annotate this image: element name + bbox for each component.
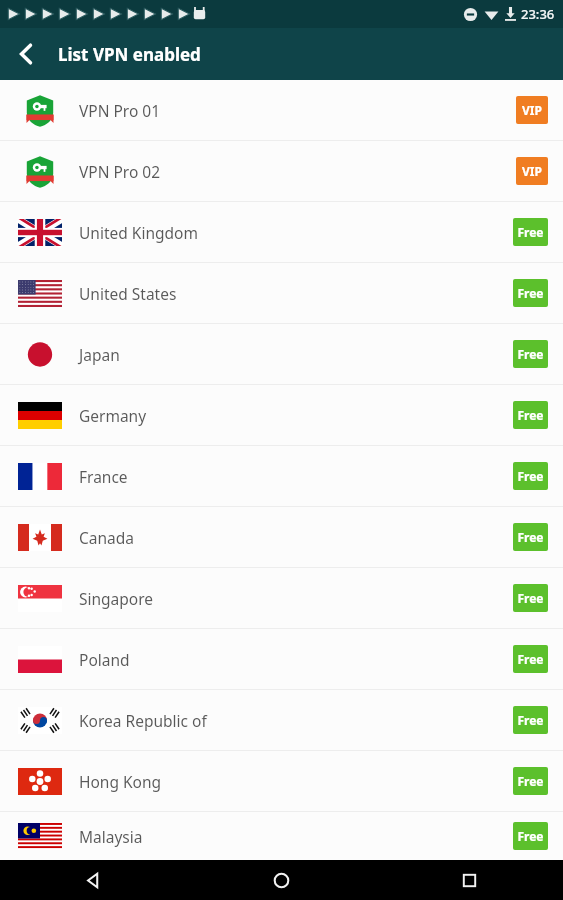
button[interactable]: Free bbox=[513, 523, 548, 551]
button[interactable]: Back bbox=[0, 860, 187, 900]
staticText: Germany bbox=[79, 405, 147, 426]
button[interactable]: VIP bbox=[516, 96, 548, 124]
button[interactable]: Free bbox=[513, 645, 548, 673]
button[interactable]: Free bbox=[513, 584, 548, 612]
staticText: Japan bbox=[79, 344, 120, 365]
button[interactable]: Free bbox=[513, 218, 548, 246]
button[interactable]: Recents bbox=[375, 860, 563, 900]
staticText: Free bbox=[517, 285, 544, 301]
staticText: Hong Kong bbox=[79, 771, 162, 792]
staticText: United Kingdom bbox=[79, 222, 198, 243]
staticText: VIP bbox=[522, 163, 542, 179]
button[interactable]: Korea Republic of bbox=[0, 690, 563, 751]
button[interactable]: Back bbox=[0, 28, 52, 80]
button[interactable]: Singapore bbox=[0, 568, 563, 629]
button[interactable]: Germany bbox=[0, 385, 563, 446]
button[interactable]: Free bbox=[513, 401, 548, 429]
staticText: Free bbox=[517, 468, 544, 484]
button[interactable]: Japan bbox=[0, 324, 563, 385]
button[interactable]: Poland bbox=[0, 629, 563, 690]
staticText: Free bbox=[517, 828, 544, 844]
button[interactable]: Canada bbox=[0, 507, 563, 568]
button[interactable]: Free bbox=[513, 767, 548, 795]
button[interactable]: United States bbox=[0, 263, 563, 324]
button[interactable]: Free bbox=[513, 462, 548, 490]
button[interactable]: Home bbox=[187, 860, 375, 900]
button[interactable]: VIP bbox=[516, 157, 548, 185]
staticText: Poland bbox=[79, 649, 130, 670]
staticText: United States bbox=[79, 283, 177, 304]
button[interactable]: VPN Pro 02 bbox=[0, 141, 563, 202]
button[interactable]: Malaysia bbox=[0, 812, 563, 860]
button[interactable]: Free bbox=[513, 279, 548, 307]
staticText: VPN Pro 02 bbox=[79, 161, 161, 182]
staticText: Singapore bbox=[79, 588, 154, 609]
button[interactable]: VPN Pro 01 bbox=[0, 80, 563, 141]
staticText: VPN Pro 01 bbox=[79, 100, 161, 121]
button[interactable]: United Kingdom bbox=[0, 202, 563, 263]
staticText: List VPN enabled bbox=[58, 43, 201, 66]
staticText: 23:36 bbox=[521, 5, 555, 23]
staticText: Free bbox=[517, 407, 544, 423]
staticText: Free bbox=[517, 712, 544, 728]
staticText: VIP bbox=[522, 102, 542, 118]
staticText: Free bbox=[517, 224, 544, 240]
button[interactable]: Free bbox=[513, 822, 548, 850]
button[interactable]: France bbox=[0, 446, 563, 507]
staticText: Free bbox=[517, 773, 544, 789]
button[interactable]: Free bbox=[513, 706, 548, 734]
button[interactable]: Hong Kong bbox=[0, 751, 563, 812]
staticText: Free bbox=[517, 346, 544, 362]
button[interactable]: Free bbox=[513, 340, 548, 368]
staticText: Malaysia bbox=[79, 826, 143, 847]
staticText: France bbox=[79, 466, 128, 487]
staticText: Korea Republic of bbox=[79, 710, 207, 731]
staticText: Free bbox=[517, 651, 544, 667]
staticText: Canada bbox=[79, 527, 134, 548]
staticText: Free bbox=[517, 590, 544, 606]
staticText: Free bbox=[517, 529, 544, 545]
